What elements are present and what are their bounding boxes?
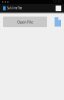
staticText: SublimeText xyxy=(7,6,22,10)
button[interactable]: Open File xyxy=(3,17,47,27)
staticText: Open File xyxy=(17,19,33,24)
staticText: 12:00 xyxy=(53,0,62,4)
